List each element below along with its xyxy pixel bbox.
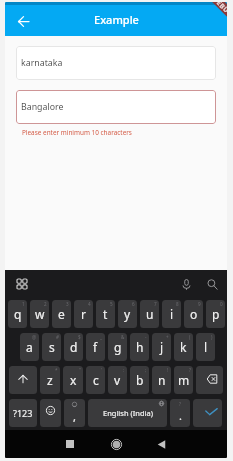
staticText: e [58, 306, 65, 322]
staticText: x [70, 372, 77, 388]
staticText: # [56, 334, 59, 340]
staticText: 1 [22, 301, 25, 307]
staticText: ! [167, 367, 169, 373]
staticText: h [136, 339, 144, 355]
staticText: z [47, 372, 53, 388]
button[interactable]: p [206, 300, 225, 328]
button[interactable]: Bangalore [16, 90, 216, 124]
button[interactable]: j [152, 333, 171, 361]
staticText: English (India) [103, 408, 153, 418]
button[interactable]: r [74, 300, 93, 328]
staticText: g [114, 339, 122, 355]
staticText: v [114, 372, 121, 388]
staticText: ( [189, 334, 191, 340]
staticText: r [81, 306, 86, 322]
staticText: $ [78, 334, 81, 340]
button[interactable]: Emoji [40, 399, 61, 427]
button[interactable]: n [152, 366, 171, 394]
staticText: & [121, 334, 125, 340]
staticText: ? [189, 367, 191, 373]
staticText: " [79, 367, 81, 373]
staticText: @ [32, 334, 37, 340]
button[interactable]: f [86, 333, 105, 361]
button[interactable]: Back [11, 9, 35, 33]
staticText: 7 [154, 301, 157, 307]
staticText: t [103, 306, 108, 322]
button[interactable]: v [108, 366, 127, 394]
staticText: 6 [132, 301, 135, 307]
staticText: karnataka [21, 57, 63, 69]
staticText: l [204, 339, 208, 355]
button[interactable]: q [8, 300, 27, 328]
staticText: 3 [66, 301, 69, 307]
staticText: . [179, 408, 182, 423]
staticText: i [170, 306, 174, 322]
staticText: c [93, 372, 99, 388]
button[interactable]: o [184, 300, 203, 328]
staticText: ; [145, 367, 147, 373]
button[interactable]: x [63, 366, 83, 394]
button[interactable]: m [174, 366, 193, 394]
button[interactable]: k [174, 333, 193, 361]
button[interactable]: d [64, 333, 83, 361]
staticText: Example [94, 12, 139, 27]
staticText: w [35, 306, 45, 322]
button[interactable]: e [52, 300, 71, 328]
staticText: n [158, 372, 166, 388]
button[interactable]: u [140, 300, 159, 328]
staticText: Please enter minimum 10 characters [22, 128, 132, 137]
staticText: + [166, 334, 169, 340]
button[interactable]: Home [107, 435, 125, 453]
staticText: 4 [88, 301, 91, 307]
button[interactable]: Search [203, 275, 221, 293]
staticText: ) [211, 334, 213, 340]
button[interactable]: Recents [61, 435, 79, 453]
button[interactable]: . [170, 399, 190, 427]
button[interactable]: g [108, 333, 127, 361]
button[interactable]: l [196, 333, 215, 361]
staticText: p [212, 306, 220, 322]
button[interactable]: c [86, 366, 105, 394]
button[interactable]: Enter [193, 399, 222, 427]
button[interactable]: a [20, 333, 39, 361]
staticText: _ [100, 334, 103, 340]
button[interactable]: h [130, 333, 149, 361]
button[interactable]: ?123 [9, 399, 37, 427]
button[interactable]: , [64, 399, 85, 427]
button[interactable]: w [30, 300, 49, 328]
staticText: k [180, 339, 187, 355]
button[interactable]: Back [152, 435, 170, 453]
button[interactable]: i [162, 300, 181, 328]
button[interactable]: Apps [13, 275, 31, 293]
staticText: d [70, 339, 78, 355]
staticText: f [93, 339, 98, 355]
staticText: q [14, 306, 22, 322]
staticText: 9 [198, 301, 201, 307]
staticText: Bangalore [21, 101, 64, 113]
staticText: 8 [176, 301, 179, 307]
button[interactable]: s [42, 333, 61, 361]
staticText: DEBUG [211, 2, 227, 18]
staticText: : [123, 367, 125, 373]
staticText: m [178, 372, 190, 388]
button[interactable]: z [40, 366, 60, 394]
button[interactable]: t [96, 300, 115, 328]
staticText: y [124, 306, 131, 322]
button[interactable]: b [130, 366, 149, 394]
staticText: b [136, 372, 144, 388]
button[interactable]: Shift [9, 366, 37, 394]
button[interactable]: karnataka [16, 46, 216, 80]
staticText: 5 [110, 301, 113, 307]
staticText: u [146, 306, 154, 322]
button[interactable]: Voice input [177, 275, 195, 293]
staticText: j [160, 339, 164, 355]
button[interactable]: Backspace [196, 366, 223, 394]
staticText: - [145, 334, 147, 340]
button[interactable]: English (India) [88, 399, 167, 427]
staticText: ? [179, 401, 181, 407]
staticText: s [49, 339, 55, 355]
staticText: ' [101, 367, 103, 373]
staticText: , [73, 409, 76, 424]
button[interactable]: y [118, 300, 137, 328]
staticText: o [190, 306, 198, 322]
